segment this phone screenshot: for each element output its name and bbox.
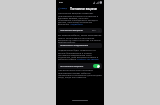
staticText: Вы можете выбрать, какие приложения смог… xyxy=(58,34,102,43)
staticText: При включении этой настройки приложение … xyxy=(58,69,102,78)
button[interactable]: Уведомления будут появляться на экране б… xyxy=(58,49,102,60)
staticText: Параметры вещания xyxy=(60,29,83,32)
button[interactable]: Показывать уведомления xyxy=(58,43,102,48)
staticText: Вкл. xyxy=(92,29,97,32)
staticText: Постоянное вещание xyxy=(70,7,98,10)
button[interactable]: Постоянное вещание позволяет приложению … xyxy=(58,12,102,25)
staticText: 9:41 xyxy=(59,1,64,4)
button[interactable]: Постоянное вещание xyxy=(58,63,102,69)
button[interactable]: Параметры вещания xyxy=(58,28,102,33)
staticText: Назад xyxy=(60,7,67,10)
staticText: Постоянное вещание xyxy=(60,65,84,68)
staticText: Показывать уведомления xyxy=(60,44,89,47)
button[interactable]: Back xyxy=(56,6,68,11)
